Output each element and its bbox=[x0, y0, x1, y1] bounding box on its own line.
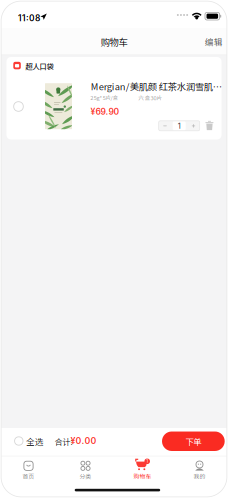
staticText: 1 bbox=[178, 122, 181, 131]
staticText: 购物车 bbox=[133, 472, 151, 479]
button[interactable]: 下单 bbox=[0, 0, 228, 498]
staticText: ¥69.90 bbox=[90, 107, 119, 116]
button[interactable]: 超人口袋 bbox=[0, 0, 228, 498]
button[interactable]: 首页 bbox=[0, 0, 228, 498]
button[interactable]: 全选 bbox=[0, 0, 228, 498]
staticText: 25g*5片/盒 bbox=[91, 94, 118, 101]
staticText: 11:08 bbox=[18, 13, 40, 21]
staticText: 六盒30片 bbox=[138, 94, 162, 101]
staticText: 我的 bbox=[193, 472, 205, 479]
button[interactable]: 编辑 bbox=[0, 0, 228, 498]
staticText: 编辑 bbox=[205, 35, 223, 48]
staticText: 购物车 bbox=[100, 35, 127, 46]
staticText: 全选 bbox=[26, 435, 44, 447]
button[interactable]: 分类 bbox=[0, 0, 228, 498]
staticText: 1 bbox=[146, 459, 148, 464]
staticText: Mergian/美肌颜 红茶水润雪肌面... bbox=[91, 79, 225, 88]
staticText: 下单 bbox=[185, 435, 201, 447]
button[interactable]: Select item bbox=[0, 0, 228, 498]
staticText: 分类 bbox=[79, 472, 91, 479]
staticText: ¥0.00 bbox=[70, 436, 96, 445]
staticText: 超人口袋 bbox=[25, 61, 53, 71]
staticText: 合计: bbox=[54, 436, 72, 445]
button[interactable]: 1 bbox=[0, 0, 228, 498]
staticText: 首页 bbox=[22, 472, 34, 479]
button[interactable]: 我的 bbox=[0, 0, 228, 498]
button[interactable]: Delete item bbox=[0, 0, 228, 498]
